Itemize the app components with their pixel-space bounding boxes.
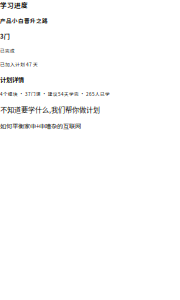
staticText: 已完成 [0,47,15,54]
staticText: 已加入计划 47 天 [0,61,38,68]
staticText: 如何平衡家中+中嘈杂的互联网 [0,122,81,130]
staticText: 计划详情 [0,75,24,84]
staticText: 产品小白晋升之路 [0,17,48,25]
staticText: 学习进度 [0,0,28,10]
staticText: 3门 [0,32,10,40]
staticText: 不知道要学什么,我们帮你做计划 [0,104,100,115]
staticText: 4个模块 · 37门课 · 建议54天学完 · 265人已学 [0,91,110,97]
